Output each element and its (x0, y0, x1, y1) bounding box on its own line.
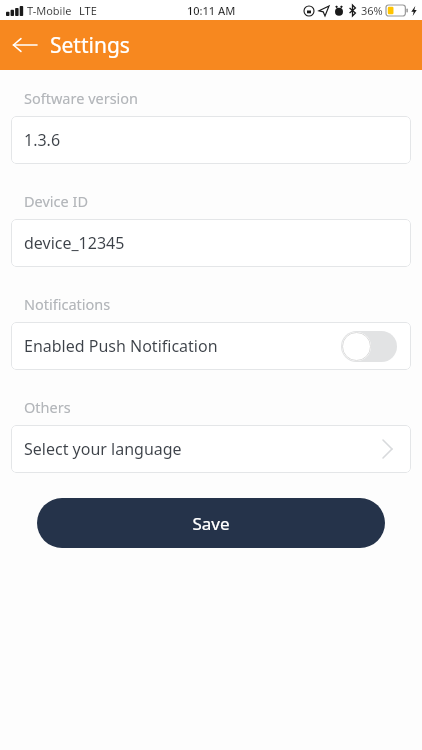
staticText: Select your language (24, 438, 182, 460)
staticText: Device ID (24, 191, 88, 211)
staticText: 36% (361, 3, 383, 18)
button[interactable]: Enabled Push Notification (11, 322, 411, 370)
staticText: 10:11 AM (187, 3, 236, 18)
staticText: T-Mobile (27, 3, 72, 18)
staticText: Software version (24, 88, 139, 108)
button[interactable]: Save (37, 498, 385, 548)
staticText: LTE (79, 3, 97, 18)
button[interactable]: device_12345 (11, 219, 411, 267)
staticText: Others (24, 397, 71, 417)
button[interactable]: 1.3.6 (11, 116, 411, 164)
staticText: Save (192, 512, 230, 535)
button[interactable]: Back (0, 20, 50, 70)
staticText: Notifications (24, 294, 111, 314)
staticText: device_12345 (24, 232, 125, 254)
staticText: Settings (50, 31, 130, 60)
button[interactable]: Select your language (11, 425, 411, 473)
staticText: Enabled Push Notification (24, 335, 218, 357)
staticText: 1.3.6 (24, 129, 61, 151)
